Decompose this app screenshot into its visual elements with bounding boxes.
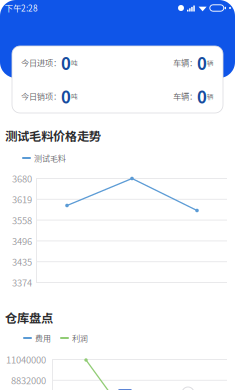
staticText: 测试毛料价格走势 xyxy=(5,127,101,144)
staticText: 11040000 xyxy=(6,353,46,366)
staticText: 0 xyxy=(61,84,71,108)
staticText: 3680 xyxy=(12,172,32,185)
staticText: 利润 xyxy=(72,332,88,344)
staticText: 测试毛料 xyxy=(34,152,66,164)
staticText: 费用 xyxy=(35,332,51,344)
staticText: 3496 xyxy=(12,234,32,248)
staticText: 3374 xyxy=(12,276,32,289)
staticText: 车辆： xyxy=(173,90,197,102)
staticText: 辆 xyxy=(207,58,214,68)
staticText: 吨 xyxy=(71,58,78,68)
staticText: 0 xyxy=(61,51,71,75)
staticText: 0 xyxy=(197,84,207,108)
staticText: 3558 xyxy=(12,213,32,227)
staticText: 3619 xyxy=(12,192,32,206)
staticText: 今日销项： xyxy=(21,90,61,102)
staticText: 8832000 xyxy=(11,373,46,387)
staticText: 0 xyxy=(197,51,207,75)
staticText: 3435 xyxy=(12,255,32,268)
staticText: 下午2:28 xyxy=(5,2,38,14)
staticText: 辆 xyxy=(207,91,214,101)
staticText: 仓库盘点 xyxy=(5,309,53,326)
staticText: 今日进项： xyxy=(21,57,61,69)
staticText: 车辆： xyxy=(173,57,197,69)
staticText: 吨 xyxy=(71,91,78,101)
